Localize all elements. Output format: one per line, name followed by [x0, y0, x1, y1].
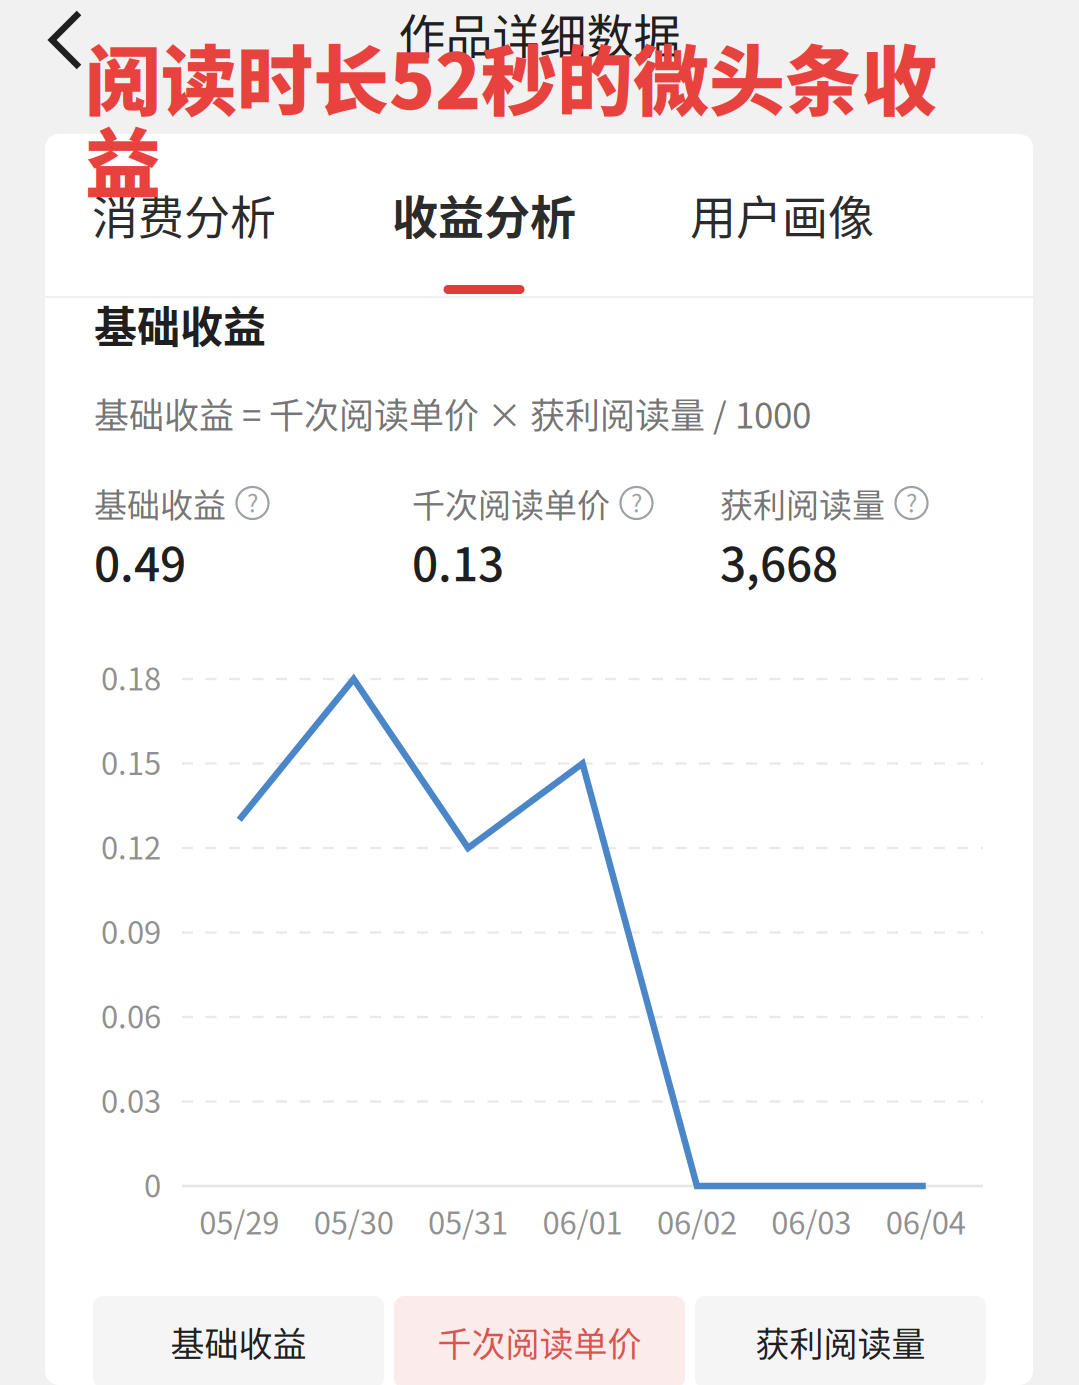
staticText: 3,668: [720, 528, 838, 595]
staticText: 千次阅读单价: [437, 1317, 641, 1367]
staticText: ?: [631, 485, 642, 519]
staticText: ?: [247, 485, 258, 519]
staticText: 消费分析: [92, 181, 276, 247]
staticText: 0.03: [101, 1077, 161, 1122]
staticText: 益: [85, 104, 161, 214]
button[interactable]: 收益分析: [354, 134, 614, 296]
staticText: 用户画像: [690, 181, 874, 247]
staticText: 0.49: [94, 528, 186, 595]
staticText: 0.15: [101, 739, 161, 784]
staticText: 0.06: [101, 993, 161, 1037]
staticText: 基础收益: [94, 293, 266, 355]
staticText: 基础收益 = 千次阅读单价 × 获利阅读量 / 1000: [94, 388, 811, 439]
staticText: ?: [906, 485, 917, 519]
staticText: 收益分析: [392, 181, 576, 247]
staticText: 基础收益: [170, 1317, 306, 1367]
button[interactable]: 基础收益: [93, 1296, 384, 1385]
staticText: 0.13: [412, 528, 504, 595]
staticText: 06/02: [657, 1199, 737, 1243]
button[interactable]: 千次阅读单价: [394, 1296, 685, 1385]
button[interactable]: 用户画像: [652, 134, 912, 296]
button[interactable]: 获利阅读量: [695, 1296, 986, 1385]
button[interactable]: Back: [26, 2, 106, 78]
staticText: 作品详细数据: [398, 0, 680, 67]
staticText: 05/30: [314, 1199, 394, 1243]
staticText: 获利阅读量: [720, 479, 885, 527]
staticText: 06/03: [771, 1199, 851, 1243]
staticText: 阅读时长52秒的微头条收: [85, 21, 937, 131]
button[interactable]: 消费分析: [54, 134, 314, 296]
staticText: 0.09: [101, 908, 161, 953]
staticText: 0.12: [101, 824, 161, 868]
staticText: 06/01: [542, 1199, 622, 1243]
staticText: 获利阅读量: [755, 1317, 925, 1367]
staticText: 0.18: [101, 655, 161, 699]
staticText: 千次阅读单价: [412, 479, 610, 527]
staticText: 基础收益: [94, 479, 226, 527]
staticText: 05/31: [428, 1199, 508, 1243]
staticText: 0: [144, 1162, 161, 1206]
staticText: 06/04: [886, 1199, 966, 1243]
staticText: 05/29: [199, 1199, 279, 1243]
